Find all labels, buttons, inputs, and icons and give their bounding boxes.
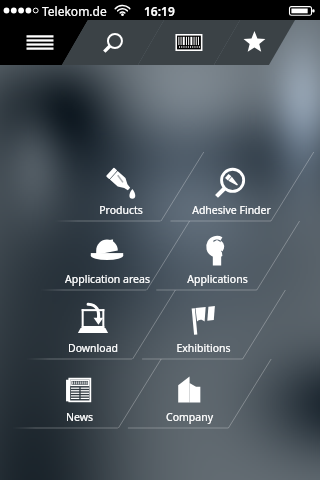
button[interactable]: Application areas: [52, 221, 162, 290]
staticText: Adhesive Finder: [192, 203, 271, 217]
staticText: Applications: [187, 272, 248, 286]
button[interactable]: Search: [62, 20, 138, 65]
button[interactable]: Exhibitions: [148, 290, 258, 359]
button[interactable]: Favourites: [214, 20, 295, 65]
staticText: Application areas: [65, 272, 150, 286]
staticText: Exhibitions: [176, 341, 231, 355]
button[interactable]: Scan barcode: [138, 20, 214, 65]
button[interactable]: Company: [134, 359, 244, 428]
button[interactable]: News: [24, 359, 134, 428]
staticText: Telekom.de: [42, 3, 107, 19]
button[interactable]: Products: [66, 152, 176, 221]
button[interactable]: Menu: [0, 20, 62, 65]
staticText: 16:19: [144, 3, 175, 19]
staticText: News: [66, 410, 93, 424]
staticText: Download: [68, 341, 118, 355]
staticText: Company: [166, 410, 213, 424]
button[interactable]: Applications: [162, 221, 272, 290]
button[interactable]: Download: [38, 290, 148, 359]
staticText: Products: [99, 203, 143, 217]
button[interactable]: Adhesive Finder: [176, 152, 286, 221]
